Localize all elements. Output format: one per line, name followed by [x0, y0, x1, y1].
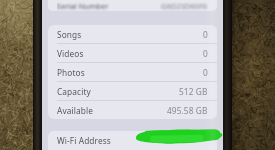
staticText: Serial Number — [57, 1, 109, 11]
button[interactable]: Wi-Fi Address — [48, 131, 217, 150]
staticText: Photos — [57, 67, 85, 78]
staticText: Videos — [57, 48, 84, 59]
staticText: Songs — [57, 29, 82, 40]
button[interactable]: Capacity — [48, 82, 217, 101]
staticText: 0 — [203, 29, 208, 40]
staticText: G6D2SD60F6 — [161, 1, 208, 11]
button[interactable]: Songs — [48, 25, 217, 44]
button[interactable]: Videos — [48, 44, 217, 63]
staticText: 512 GB — [179, 86, 208, 97]
staticText: Available — [57, 105, 93, 116]
staticText: 0 — [203, 67, 208, 78]
staticText: 0 — [203, 48, 208, 59]
other: Redacted Wi-Fi address — [42, 0, 223, 150]
button[interactable]: Available — [48, 101, 217, 119]
button[interactable]: Serial Number — [48, 0, 217, 11]
staticText: Wi-Fi Address — [57, 135, 111, 146]
staticText: 495.58 GB — [167, 105, 208, 116]
button[interactable]: Photos — [48, 63, 217, 82]
staticText: Capacity — [57, 86, 91, 97]
